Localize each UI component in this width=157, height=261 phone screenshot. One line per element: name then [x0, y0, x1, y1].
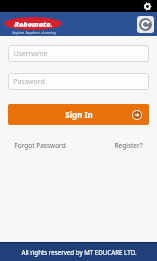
button[interactable]: Register?: [112, 138, 145, 153]
staticText: Password: [13, 77, 45, 87]
button[interactable]: Sign In: [8, 104, 149, 125]
staticText: Anytime Anywhere eLearning: [12, 31, 56, 35]
staticText: Sign In: [65, 109, 93, 120]
other: Settings: [143, 2, 152, 11]
button[interactable]: Forgot Password: [12, 138, 68, 153]
staticText: Robomate.: [14, 19, 53, 29]
button[interactable]: Username: [8, 45, 149, 62]
button[interactable]: Robomate: [4, 17, 62, 30]
button[interactable]: Refresh: [139, 18, 152, 31]
staticText: Register?: [114, 141, 143, 150]
button[interactable]: Password: [8, 73, 149, 90]
staticText: Forgot Password: [14, 141, 66, 150]
staticText: All rights reserved by MT EDUCARE LTD.: [21, 248, 137, 256]
staticText: Username: [13, 49, 48, 59]
